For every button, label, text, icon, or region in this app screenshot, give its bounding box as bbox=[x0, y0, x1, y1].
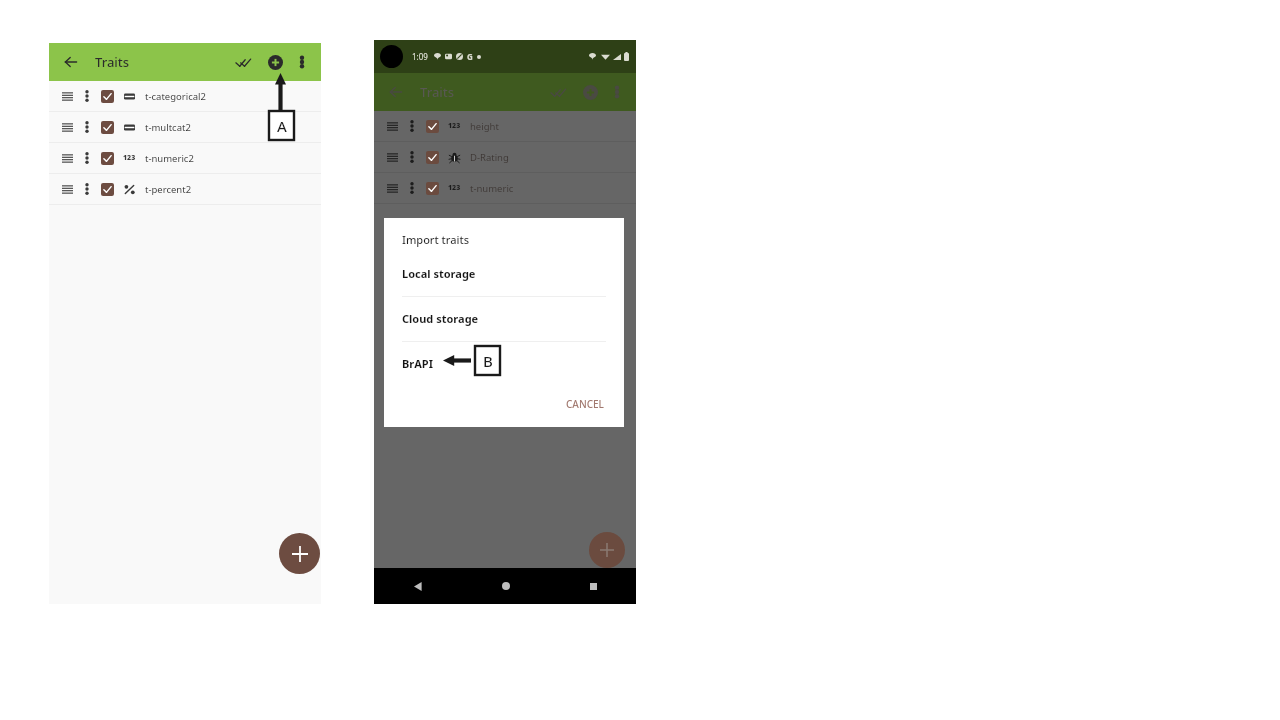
staticText: Import traits bbox=[402, 232, 470, 247]
button[interactable]: Add trait bbox=[589, 532, 625, 568]
button[interactable]: More options bbox=[607, 82, 627, 102]
button[interactable]: Back bbox=[407, 575, 429, 597]
staticText: G bbox=[467, 51, 473, 62]
button[interactable]: Local storage bbox=[384, 264, 624, 283]
button[interactable]: Row menu bbox=[79, 181, 95, 197]
button[interactable]: Row menu bbox=[79, 150, 95, 166]
button[interactable]: BrAPI bbox=[384, 354, 624, 373]
staticText: t-numeric bbox=[470, 182, 514, 195]
button[interactable]: Reorder bbox=[58, 87, 76, 105]
staticText: CANCEL bbox=[566, 397, 604, 411]
button[interactable] bbox=[98, 87, 116, 105]
staticText: t-percent2 bbox=[145, 183, 192, 196]
button[interactable] bbox=[98, 180, 116, 198]
button[interactable]: Reorder bbox=[49, 112, 321, 142]
button[interactable]: Select all bbox=[231, 50, 255, 74]
button[interactable]: Reorder bbox=[58, 180, 76, 198]
staticText: B bbox=[483, 351, 493, 371]
staticText: BrAPI bbox=[402, 356, 433, 371]
button[interactable]: Back bbox=[60, 51, 82, 73]
button[interactable]: Add trait bbox=[279, 533, 320, 574]
staticText: 123 bbox=[448, 183, 461, 193]
button[interactable]: Reorder bbox=[383, 148, 401, 166]
button[interactable]: Reorder bbox=[58, 149, 76, 167]
button[interactable]: Home bbox=[495, 575, 517, 597]
button[interactable]: Reorder bbox=[374, 142, 636, 172]
staticText: Local storage bbox=[402, 266, 476, 281]
button[interactable] bbox=[98, 118, 116, 136]
staticText: t-numeric2 bbox=[145, 152, 194, 165]
button[interactable]: More options bbox=[292, 52, 312, 72]
staticText: Traits bbox=[420, 83, 455, 101]
staticText: A bbox=[277, 116, 287, 136]
button[interactable] bbox=[423, 148, 441, 166]
button[interactable]: Select all bbox=[546, 80, 570, 104]
staticText: D-Rating bbox=[470, 151, 509, 164]
staticText: Cloud storage bbox=[402, 311, 479, 326]
button[interactable]: Row menu bbox=[404, 180, 420, 196]
button[interactable]: CANCEL bbox=[561, 393, 609, 415]
staticText: t-categorical2 bbox=[145, 90, 206, 103]
staticText: 1:09 bbox=[412, 51, 428, 62]
button[interactable]: Reorder bbox=[49, 81, 321, 111]
button[interactable]: Row menu bbox=[404, 118, 420, 134]
button[interactable] bbox=[423, 117, 441, 135]
button[interactable]: Reorder bbox=[374, 173, 636, 203]
button[interactable]: Back bbox=[385, 81, 407, 103]
staticText: 123 bbox=[448, 121, 461, 131]
button[interactable]: Reorder bbox=[49, 174, 321, 204]
button[interactable]: Reorder bbox=[383, 179, 401, 197]
staticText: 123 bbox=[123, 153, 136, 163]
button[interactable]: Row menu bbox=[79, 88, 95, 104]
button[interactable] bbox=[423, 179, 441, 197]
button[interactable]: Add trait bbox=[263, 50, 287, 74]
button[interactable]: Reorder bbox=[374, 111, 636, 141]
button[interactable]: Row menu bbox=[404, 149, 420, 165]
button[interactable]: Reorder bbox=[58, 118, 76, 136]
staticText: t-multcat2 bbox=[145, 121, 191, 134]
button[interactable]: Cloud storage bbox=[384, 309, 624, 328]
button[interactable]: Reorder bbox=[383, 117, 401, 135]
button[interactable]: Reorder bbox=[49, 143, 321, 173]
staticText: Traits bbox=[95, 53, 130, 71]
staticText: height bbox=[470, 120, 499, 133]
button[interactable]: Row menu bbox=[79, 119, 95, 135]
button[interactable] bbox=[98, 149, 116, 167]
button[interactable]: Recent apps bbox=[582, 575, 604, 597]
button[interactable]: Add trait bbox=[578, 80, 602, 104]
